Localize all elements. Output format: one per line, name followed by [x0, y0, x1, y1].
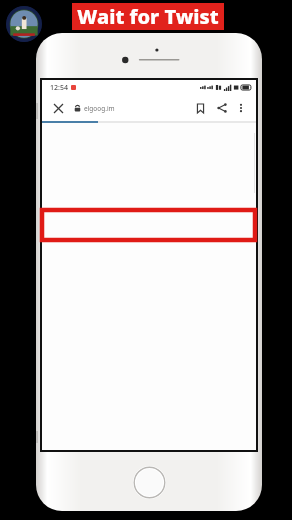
button[interactable]: Home button: [133, 466, 166, 499]
button[interactable]: More options: [233, 100, 249, 116]
button[interactable]: Channel avatar: [6, 6, 42, 42]
button[interactable]: Share: [213, 99, 231, 117]
button[interactable]: Wait for Twist: [72, 3, 224, 30]
button[interactable]: Close: [49, 99, 67, 117]
staticText: elgoog.im: [84, 104, 115, 113]
staticText: 12:54: [50, 83, 68, 93]
button[interactable]: Bookmark: [191, 99, 209, 117]
staticText: Wait for Twist: [77, 3, 219, 30]
button[interactable]: elgoog.im: [74, 95, 191, 121]
